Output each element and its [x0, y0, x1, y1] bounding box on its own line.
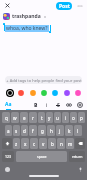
button[interactable]: Close — [3, 1, 12, 10]
staticText: g — [41, 128, 44, 134]
staticText: q — [5, 115, 8, 121]
staticText: S — [57, 102, 60, 109]
staticText: whoa, who knew? — [6, 25, 48, 32]
button[interactable]: Colour option — [73, 88, 82, 97]
staticText: n — [60, 141, 63, 147]
staticText: b — [51, 141, 54, 147]
staticText: Post — [59, 3, 70, 10]
button[interactable]: Colour option — [28, 88, 37, 97]
button[interactable]: n — [57, 138, 65, 149]
button[interactable]: Colour option — [5, 88, 14, 97]
button[interactable]: + Add tags to help people find your post — [5, 76, 82, 84]
button[interactable]: s — [13, 125, 20, 136]
staticText: a — [7, 128, 10, 134]
button[interactable]: b — [48, 138, 56, 149]
staticText: v — [42, 141, 45, 147]
button[interactable]: e — [20, 112, 28, 123]
staticText: l — [77, 128, 79, 134]
button[interactable]: d — [21, 125, 28, 136]
staticText: o — [72, 115, 75, 121]
button[interactable]: m — [66, 138, 74, 149]
button[interactable]: r — [29, 112, 37, 123]
button[interactable]: whoa, who knew? — [3, 23, 51, 33]
button[interactable]: k — [65, 125, 73, 136]
staticText: h — [50, 128, 53, 134]
button[interactable]: g — [38, 125, 46, 136]
button[interactable]: i — [62, 112, 69, 123]
button[interactable]: Colour option — [50, 88, 59, 97]
staticText: 123 — [5, 154, 12, 159]
staticText: trashpanda — [12, 13, 41, 20]
button[interactable]: Emoji — [3, 165, 11, 173]
staticText: i — [65, 115, 67, 121]
staticText: k — [68, 128, 71, 134]
button[interactable]: Text style — [3, 100, 13, 110]
button[interactable]: Strikethrough — [54, 101, 62, 109]
button[interactable]: Bold — [32, 101, 40, 109]
button[interactable]: u — [54, 112, 61, 123]
button[interactable]: Colour option — [39, 88, 48, 97]
button[interactable]: space — [16, 151, 67, 162]
button[interactable]: x — [21, 138, 29, 149]
staticText: t — [41, 115, 43, 121]
staticText: space — [37, 154, 47, 159]
button[interactable]: w — [11, 112, 19, 123]
staticText: return — [72, 154, 83, 159]
staticText: + Add tags to help people find your post — [6, 78, 82, 83]
staticText: Aa — [5, 101, 12, 108]
button[interactable]: Dictation — [76, 165, 84, 173]
staticText: s — [15, 128, 18, 134]
button[interactable]: q — [2, 112, 10, 123]
staticText: c — [33, 141, 36, 147]
staticText: m — [68, 141, 73, 147]
button[interactable]: trashpanda — [3, 12, 87, 21]
button[interactable]: v — [39, 138, 47, 149]
button[interactable]: f — [29, 125, 37, 136]
staticText: w — [13, 115, 17, 121]
staticText: d — [23, 128, 26, 134]
staticText: j — [59, 128, 61, 134]
staticText: B — [34, 102, 38, 109]
button[interactable]: o — [70, 112, 77, 123]
button[interactable]: Insert link — [65, 101, 73, 109]
staticText: p — [80, 115, 83, 121]
button[interactable]: a — [5, 125, 12, 136]
button[interactable]: return — [69, 151, 85, 162]
button[interactable]: t — [38, 112, 45, 123]
button[interactable]: c — [30, 138, 38, 149]
staticText: y — [48, 115, 51, 121]
staticText: r — [32, 115, 34, 121]
button[interactable]: h — [47, 125, 55, 136]
button[interactable]: Colour option — [62, 88, 71, 97]
button[interactable]: j — [56, 125, 64, 136]
button[interactable]: Mention — [76, 101, 84, 109]
button[interactable]: Shift — [2, 138, 12, 149]
button[interactable]: Italic — [43, 101, 51, 109]
staticText: f — [32, 128, 34, 134]
button[interactable]: z — [13, 138, 20, 149]
staticText: z — [15, 141, 18, 147]
button[interactable]: More options — [75, 1, 84, 10]
button[interactable]: l — [74, 125, 82, 136]
staticText: i — [46, 102, 48, 109]
button[interactable]: 123 — [2, 151, 14, 162]
staticText: x — [24, 141, 27, 147]
button[interactable]: Colour option — [16, 88, 25, 97]
staticText: u — [56, 115, 59, 121]
button[interactable]: y — [46, 112, 53, 123]
staticText: e — [23, 115, 26, 121]
button[interactable]: Backspace — [75, 138, 85, 149]
button[interactable]: Post — [56, 2, 72, 10]
button[interactable]: p — [78, 112, 85, 123]
